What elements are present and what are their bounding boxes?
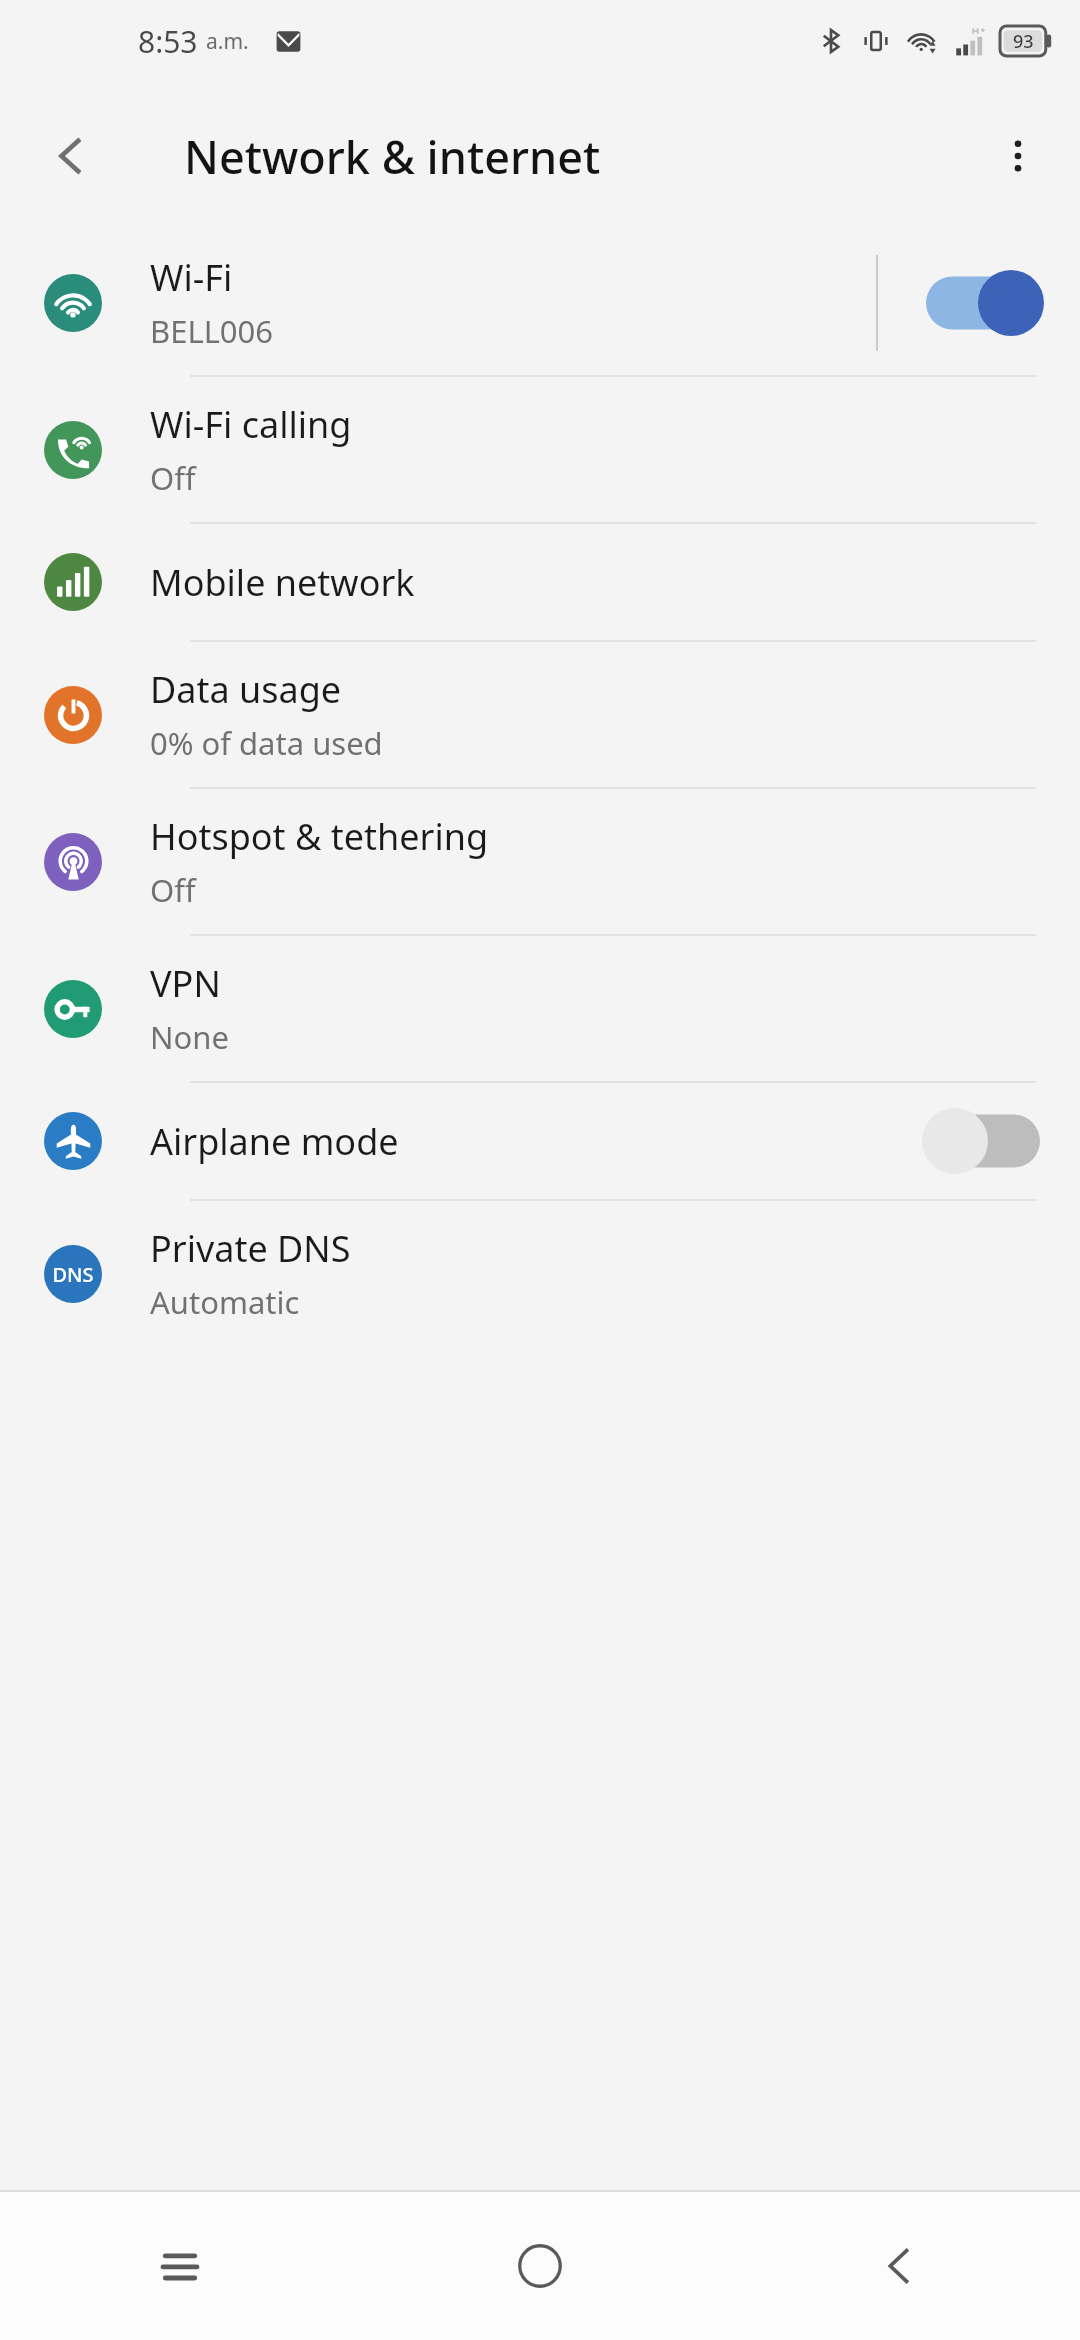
- button[interactable]: DNS: [0, 1201, 1080, 1346]
- staticText: Wi-Fi calling: [150, 400, 352, 449]
- button[interactable]: Airplane mode: [0, 1083, 1080, 1199]
- staticText: Private DNS: [150, 1224, 351, 1273]
- button[interactable]: Hotspot & tethering: [0, 789, 1080, 934]
- staticText: Data usage: [150, 665, 342, 714]
- staticText: DNS: [52, 1261, 94, 1288]
- staticText: Mobile network: [150, 558, 415, 607]
- staticText: BELL006: [150, 310, 274, 352]
- staticText: Airplane mode: [150, 1117, 399, 1166]
- button[interactable]: Home: [360, 2192, 720, 2340]
- button[interactable]: Mobile network: [0, 524, 1080, 640]
- button[interactable]: More options: [978, 116, 1058, 196]
- staticText: Off: [150, 869, 196, 911]
- button[interactable]: Toggle on: [926, 270, 1044, 336]
- staticText: Hotspot & tethering: [150, 812, 489, 861]
- staticText: None: [150, 1016, 229, 1058]
- staticText: Wi-Fi: [150, 253, 233, 302]
- button[interactable]: Back: [32, 116, 112, 196]
- staticText: Automatic: [150, 1281, 300, 1323]
- staticText: 93: [1013, 29, 1034, 54]
- staticText: a.m.: [206, 27, 249, 56]
- staticText: Off: [150, 457, 196, 499]
- staticText: Network & internet: [184, 126, 601, 187]
- button[interactable]: Back: [720, 2192, 1080, 2340]
- staticText: VPN: [150, 959, 221, 1008]
- button[interactable]: Recent apps: [0, 2192, 360, 2340]
- staticText: 0% of data used: [150, 722, 383, 764]
- button[interactable]: VPN: [0, 936, 1080, 1081]
- button[interactable]: Wi-Fi calling: [0, 377, 1080, 522]
- button[interactable]: Toggle off: [922, 1108, 1040, 1174]
- button[interactable]: Wi-Fi: [0, 230, 1080, 375]
- button[interactable]: Data usage: [0, 642, 1080, 787]
- staticText: 8:53: [138, 21, 198, 62]
